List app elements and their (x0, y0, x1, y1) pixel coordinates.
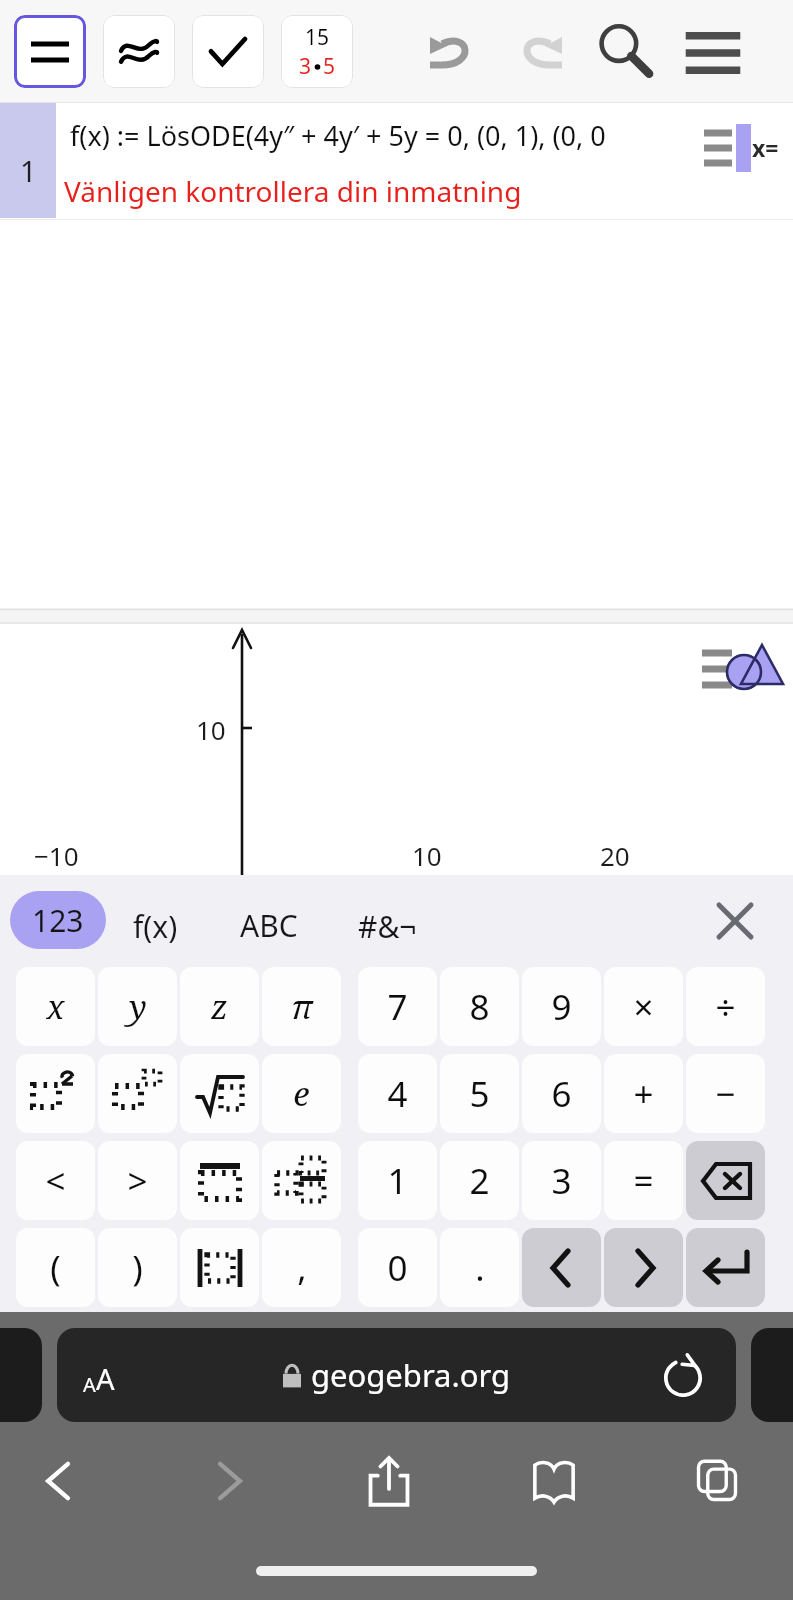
button[interactable]: Enter (686, 1228, 765, 1307)
button[interactable]: 8 (440, 967, 519, 1046)
button[interactable]: e (262, 1054, 341, 1133)
staticText: A (96, 1359, 115, 1398)
button[interactable]: = (604, 1141, 683, 1220)
button[interactable]: ABC (240, 902, 344, 948)
button[interactable]: Search (592, 18, 656, 82)
staticText: 4 (387, 1070, 408, 1118)
button[interactable]: ) (98, 1228, 177, 1307)
staticText: 9 (551, 983, 572, 1031)
button[interactable]: Menu (682, 22, 744, 84)
staticText: 10 (412, 838, 442, 873)
button[interactable]: Approximate (103, 15, 175, 88)
button[interactable]: , (262, 1228, 341, 1307)
staticText: < (45, 1157, 66, 1205)
button[interactable]: Square (16, 1054, 95, 1133)
staticText: f(x) := LösODE(4y″ + 4y′ + 5y = 0, (0, 1… (70, 117, 606, 154)
button[interactable]: Forward (195, 1448, 261, 1514)
button[interactable]: 4 (358, 1054, 437, 1133)
staticText: 7 (387, 983, 408, 1031)
button[interactable]: f(x) (133, 903, 237, 949)
button[interactable]: Reload (657, 1350, 709, 1402)
staticText: 0 (387, 1244, 408, 1292)
button[interactable]: ÷ (686, 967, 765, 1046)
button[interactable]: Back (27, 1448, 93, 1514)
button[interactable]: . (440, 1228, 519, 1307)
staticText: × (633, 983, 654, 1031)
button[interactable]: 6 (522, 1054, 601, 1133)
staticText: z (211, 984, 228, 1029)
staticText: A (83, 1371, 96, 1398)
staticText: ABC (240, 905, 298, 946)
staticText: Vänligen kontrollera din inmatning (64, 172, 522, 210)
button[interactable]: × (604, 967, 683, 1046)
button[interactable]: 1 (0, 103, 56, 218)
button[interactable]: z (180, 967, 259, 1046)
button[interactable]: + (604, 1054, 683, 1133)
staticText: #&¬ (358, 906, 417, 947)
button[interactable]: Tabs (684, 1448, 750, 1514)
button[interactable]: Backspace (686, 1141, 765, 1220)
staticText: ÷ (715, 983, 736, 1031)
staticText: , (297, 1244, 307, 1292)
button[interactable]: < (16, 1141, 95, 1220)
button[interactable]: Close keyboard (706, 892, 764, 950)
button[interactable]: Move right (604, 1228, 683, 1307)
button[interactable]: Exact equals (14, 15, 86, 88)
staticText: > (127, 1157, 148, 1205)
button[interactable]: Factorise (281, 15, 353, 88)
staticText: ( (50, 1244, 61, 1292)
staticText: 15 (305, 23, 330, 52)
button[interactable]: 9 (522, 967, 601, 1046)
button[interactable]: Check (192, 15, 264, 88)
staticText: geogebra.org (311, 1354, 511, 1396)
staticText: f(x) (133, 906, 178, 947)
button[interactable]: Mixed number (262, 1141, 341, 1220)
button[interactable]: 5 (440, 1054, 519, 1133)
button[interactable]: Fraction (180, 1141, 259, 1220)
staticText: 2 (469, 1157, 490, 1205)
staticText: e (293, 1071, 310, 1116)
staticText: . (475, 1244, 485, 1292)
staticText: 10 (196, 712, 226, 747)
button[interactable]: − (686, 1054, 765, 1133)
button[interactable]: Square root (180, 1054, 259, 1133)
button[interactable]: Redo (508, 21, 568, 81)
button[interactable]: 0 (358, 1228, 437, 1307)
button[interactable]: Share (356, 1448, 422, 1514)
staticText: 8 (469, 983, 490, 1031)
staticText: ) (132, 1244, 143, 1292)
button[interactable]: 2 (440, 1141, 519, 1220)
staticText: 123 (32, 900, 84, 941)
staticText: + (633, 1070, 654, 1118)
button[interactable]: Address bar geogebra.org (57, 1328, 736, 1422)
button[interactable]: > (98, 1141, 177, 1220)
button[interactable]: Bookmarks (521, 1448, 587, 1514)
button[interactable]: y (98, 967, 177, 1046)
button[interactable]: x (16, 967, 95, 1046)
button[interactable]: Power (98, 1054, 177, 1133)
staticText: 6 (551, 1070, 572, 1118)
staticText: x= (752, 132, 779, 163)
button[interactable]: Absolute value (180, 1228, 259, 1307)
button[interactable]: Undo (424, 21, 484, 81)
staticText: x (46, 984, 65, 1029)
button[interactable]: 7 (358, 967, 437, 1046)
button[interactable]: #&¬ (358, 903, 462, 949)
button[interactable]: π (262, 967, 341, 1046)
button[interactable]: 1 (358, 1141, 437, 1220)
staticText: −10 (34, 838, 79, 873)
staticText: 1 (20, 151, 37, 190)
staticText: 3 (299, 52, 312, 81)
button[interactable]: Graphics view settings (688, 634, 793, 706)
staticText: y (129, 984, 147, 1029)
button[interactable]: ( (16, 1228, 95, 1307)
button[interactable]: Algebra view settings (688, 109, 793, 185)
staticText: 3 (551, 1157, 572, 1205)
staticText: π (291, 984, 313, 1029)
button[interactable]: Move left (522, 1228, 601, 1307)
staticText: 20 (600, 838, 630, 873)
staticText: − (715, 1070, 736, 1118)
button[interactable]: 123 (10, 891, 106, 949)
staticText: 5 (469, 1070, 490, 1118)
button[interactable]: 3 (522, 1141, 601, 1220)
